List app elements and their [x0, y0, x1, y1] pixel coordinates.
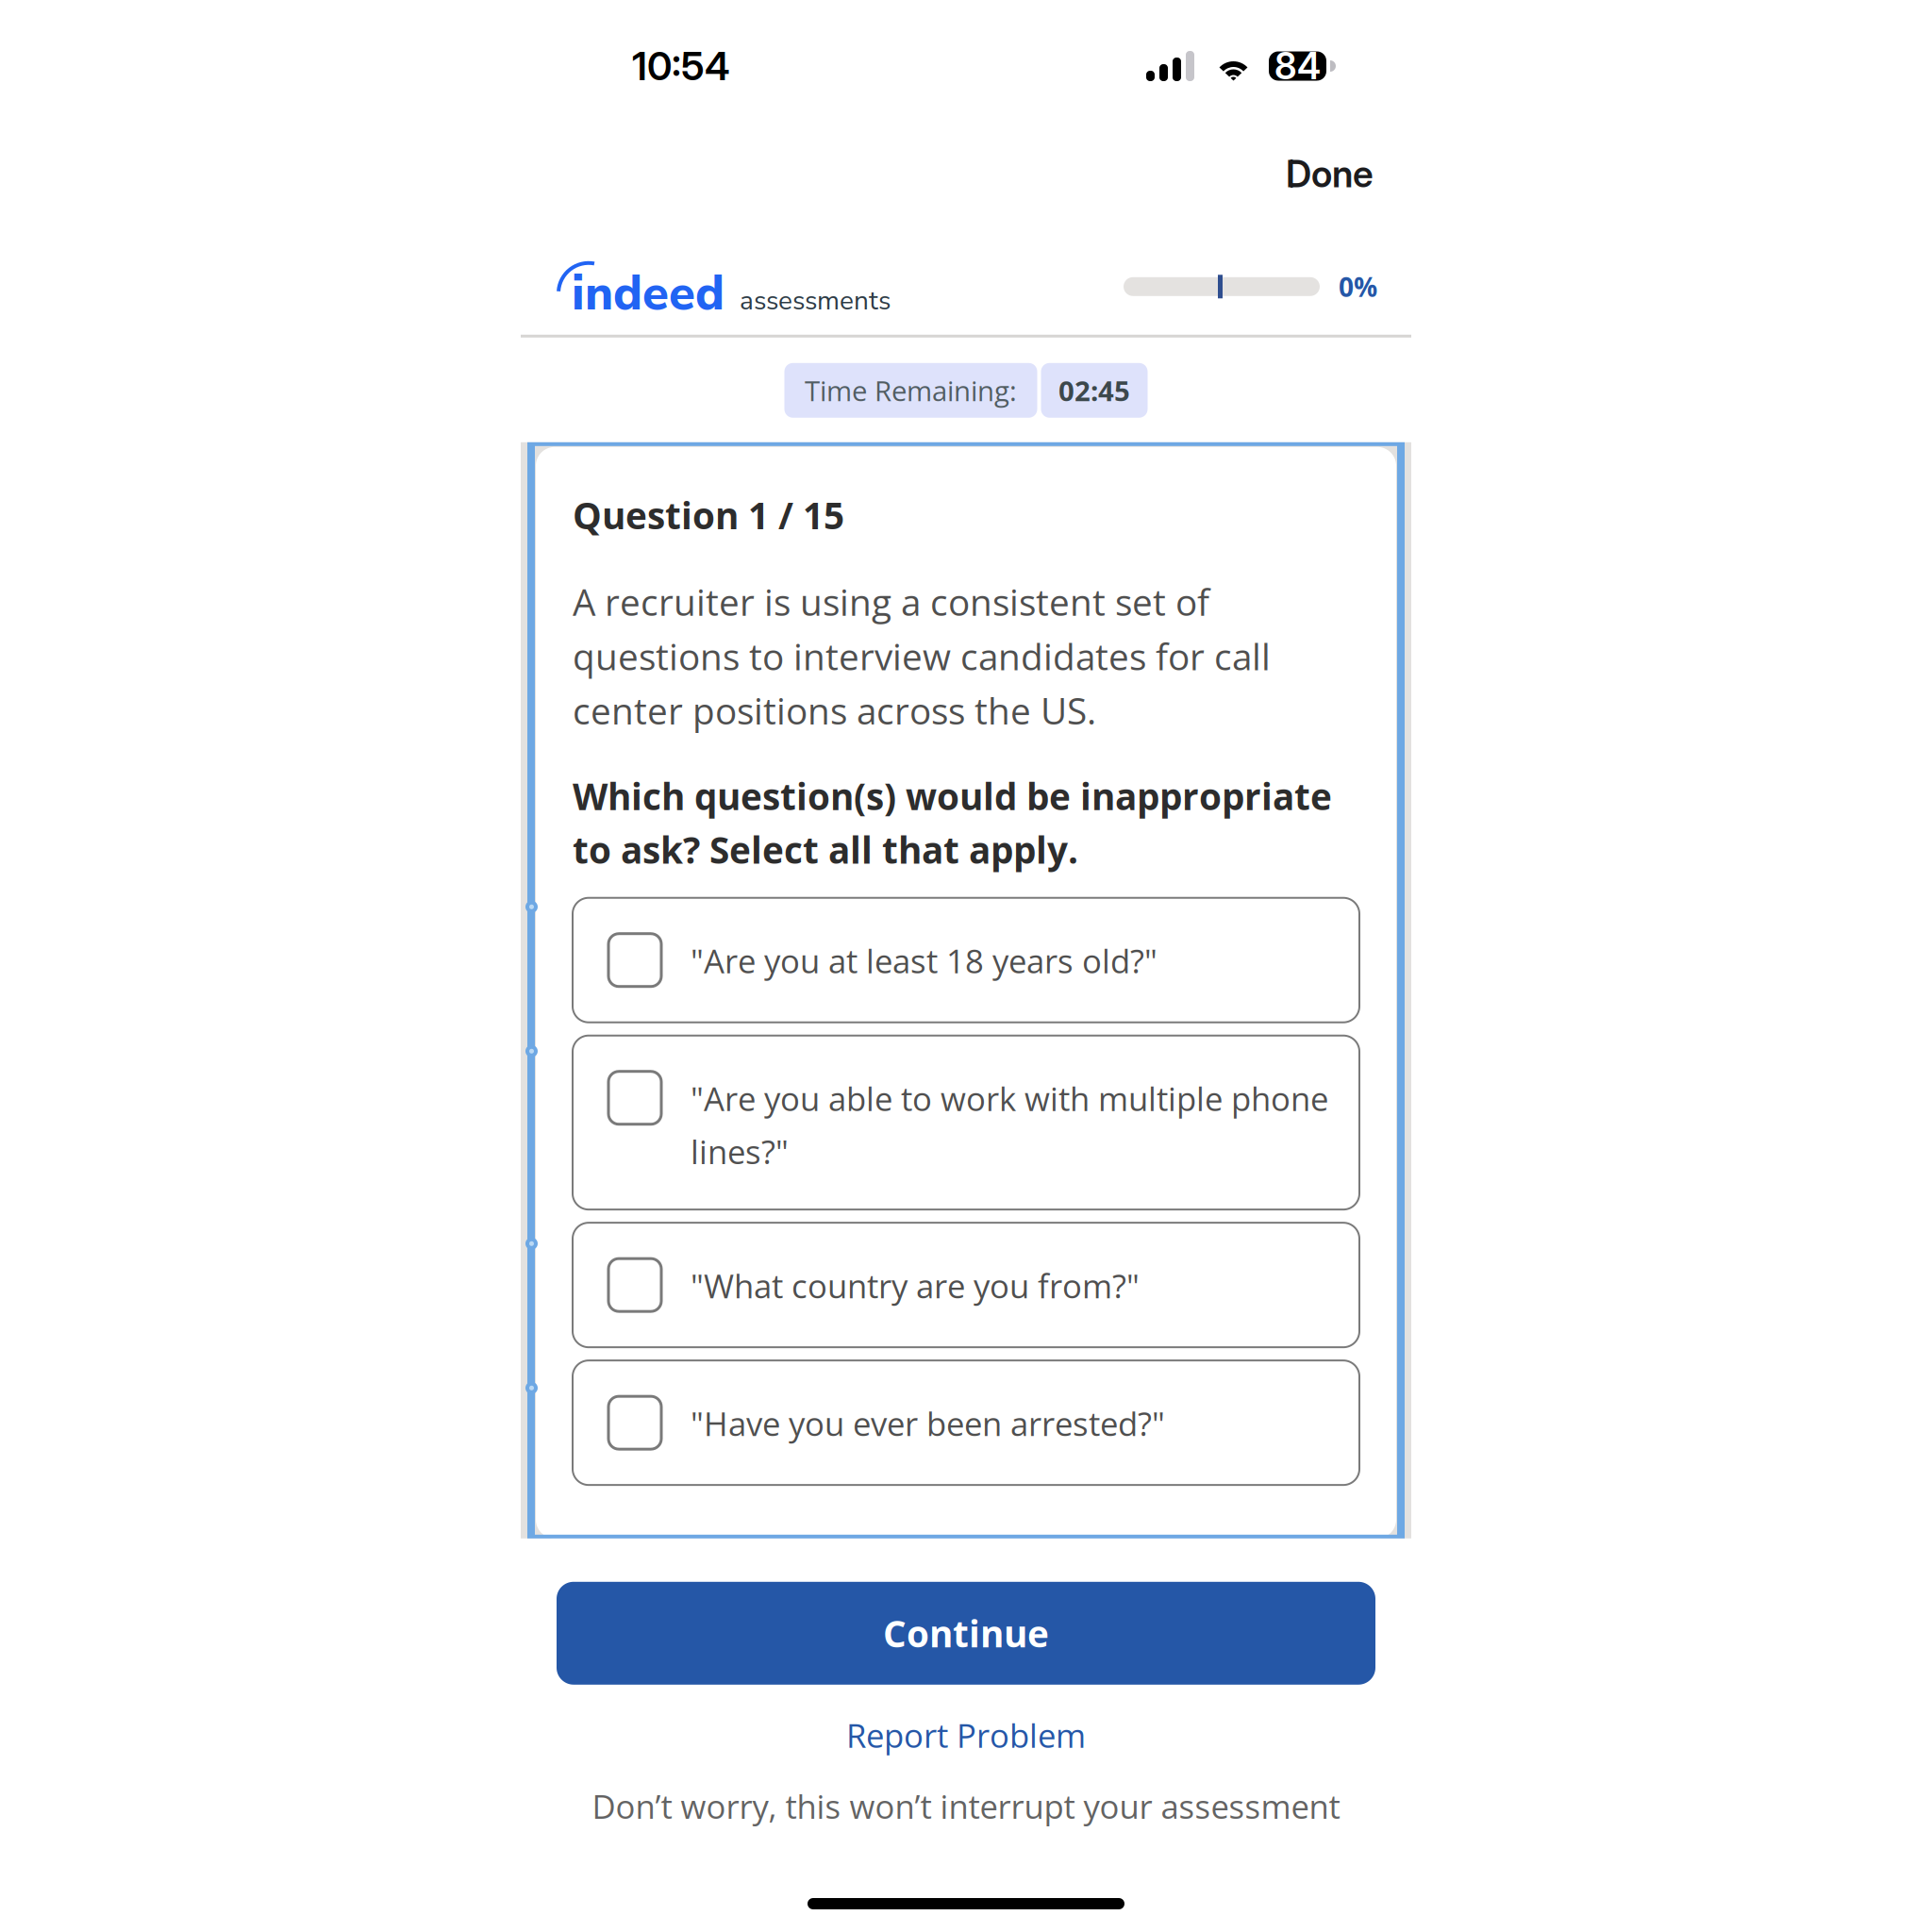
- staticText: Continue: [883, 1608, 1049, 1658]
- button[interactable]: Done: [1269, 157, 1391, 231]
- button[interactable]: Continue: [557, 1582, 1375, 1685]
- staticText: Report Problem: [846, 1713, 1086, 1757]
- staticText: assessments: [740, 283, 891, 319]
- staticText: Question 1 / 15: [573, 490, 844, 540]
- staticText: "Are you at least 18 years old?": [691, 938, 1158, 983]
- staticText: indeed: [572, 261, 724, 326]
- staticText: 84: [1274, 44, 1321, 88]
- staticText: 10:54: [632, 42, 730, 90]
- button[interactable]: "What country are you from?": [573, 1223, 1359, 1347]
- button[interactable]: "Have you ever been arrested?": [573, 1360, 1359, 1485]
- staticText: Don’t worry, this won’t interrupt your a…: [592, 1784, 1340, 1828]
- button[interactable]: "Are you able to work with multiple phon…: [573, 1036, 1359, 1209]
- button[interactable]: Report Problem: [827, 1707, 1105, 1763]
- button[interactable]: "Are you at least 18 years old?": [573, 898, 1359, 1022]
- staticText: "Are you able to work with multiple phon…: [691, 1076, 1328, 1174]
- staticText: "What country are you from?": [691, 1263, 1140, 1308]
- staticText: Done: [1286, 152, 1374, 196]
- staticText: 02:45: [1058, 371, 1130, 409]
- staticText: A recruiter is using a consistent set of…: [573, 577, 1271, 735]
- staticText: Time Remaining:: [805, 371, 1017, 409]
- staticText: "Have you ever been arrested?": [691, 1401, 1165, 1446]
- staticText: Which question(s) would be inappropriate…: [573, 771, 1332, 874]
- staticText: 0%: [1339, 269, 1377, 305]
